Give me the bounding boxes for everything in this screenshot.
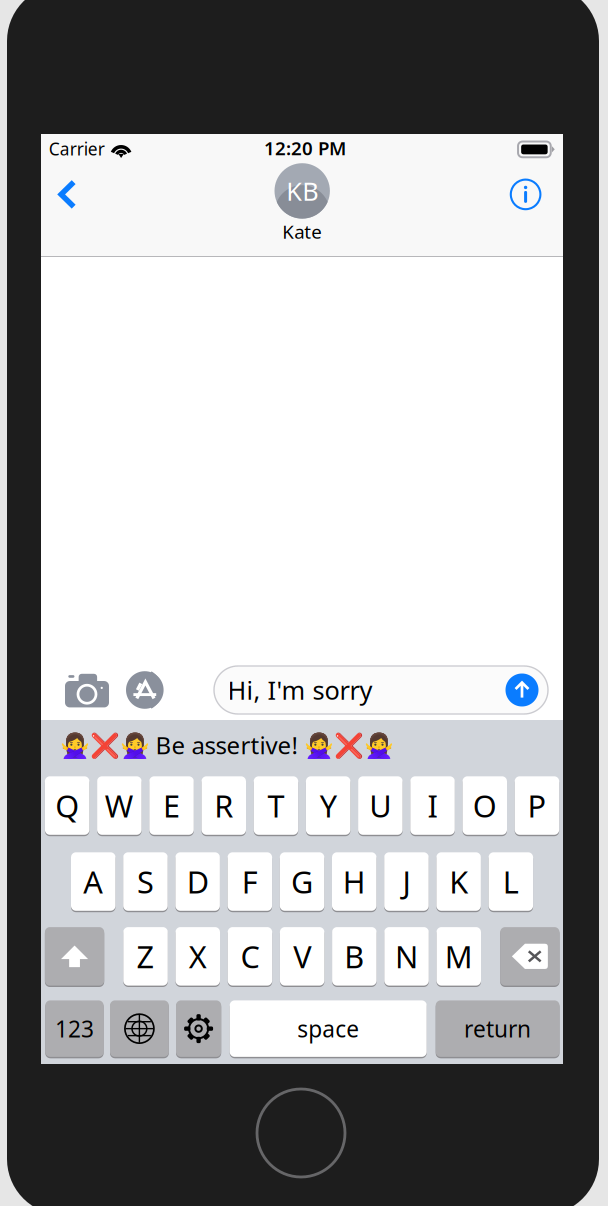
button[interactable]: Details bbox=[500, 168, 552, 220]
staticText: Hi, I'm sorry bbox=[227, 673, 372, 707]
staticText: KB bbox=[286, 174, 318, 208]
staticText: C bbox=[240, 936, 259, 977]
button[interactable]: Y bbox=[306, 776, 350, 835]
button[interactable]: Q bbox=[45, 776, 89, 835]
staticText: B bbox=[344, 936, 364, 977]
button[interactable]: 123 bbox=[45, 1000, 104, 1057]
staticText: V bbox=[293, 936, 311, 977]
staticText: Q bbox=[55, 785, 79, 826]
staticText: D bbox=[187, 861, 209, 902]
button[interactable]: Next keyboard bbox=[110, 1000, 169, 1057]
staticText: R bbox=[214, 785, 233, 826]
button[interactable]: R bbox=[201, 776, 246, 835]
button[interactable]: L bbox=[489, 852, 533, 911]
button[interactable]: J bbox=[384, 852, 429, 911]
button[interactable]: Kate bbox=[257, 163, 347, 247]
staticText: A bbox=[83, 861, 103, 902]
staticText: H bbox=[343, 861, 366, 902]
button[interactable]: Keyboard settings bbox=[176, 1000, 221, 1057]
button[interactable]: App Store bbox=[121, 666, 171, 714]
staticText: N bbox=[395, 936, 418, 977]
button[interactable]: Delete bbox=[500, 927, 559, 986]
staticText: Kate bbox=[282, 219, 322, 244]
button[interactable]: Send bbox=[505, 673, 538, 706]
staticText: Carrier bbox=[49, 137, 105, 160]
button[interactable]: F bbox=[228, 852, 272, 911]
button[interactable]: D bbox=[175, 852, 220, 911]
button[interactable]: N bbox=[384, 927, 429, 986]
button[interactable]: C bbox=[228, 927, 272, 986]
button[interactable]: S bbox=[123, 852, 168, 911]
button[interactable]: Shift bbox=[45, 927, 104, 986]
button[interactable]: M bbox=[436, 927, 481, 986]
button[interactable]: Back bbox=[40, 167, 94, 221]
button[interactable]: B bbox=[332, 927, 377, 986]
staticText: F bbox=[242, 861, 258, 902]
button[interactable]: W bbox=[97, 776, 142, 835]
button[interactable]: O bbox=[462, 776, 507, 835]
button[interactable]: I bbox=[410, 776, 455, 835]
button[interactable]: Z bbox=[123, 927, 168, 986]
staticText: Y bbox=[320, 785, 337, 826]
staticText: 12:20 PM bbox=[264, 136, 346, 160]
staticText: O bbox=[473, 785, 497, 826]
staticText: M bbox=[445, 936, 473, 977]
button[interactable]: X bbox=[175, 927, 220, 986]
staticText: X bbox=[189, 936, 207, 977]
button[interactable]: K bbox=[436, 852, 481, 911]
staticText: 123 bbox=[55, 1014, 94, 1044]
staticText: I bbox=[428, 785, 438, 826]
button[interactable]: H bbox=[332, 852, 376, 911]
button[interactable]: P bbox=[515, 776, 559, 835]
staticText: S bbox=[137, 861, 154, 902]
staticText: T bbox=[267, 785, 284, 826]
staticText: Z bbox=[137, 936, 155, 977]
button[interactable]: Camera bbox=[62, 665, 112, 715]
staticText: J bbox=[402, 861, 410, 902]
staticText: 🙅‍♀️❌🙅‍♀️ Be assertive! 🙅‍♀️❌🙅‍♀️ bbox=[59, 729, 393, 761]
button[interactable]: U bbox=[358, 776, 403, 835]
button[interactable]: A bbox=[71, 852, 115, 911]
button[interactable]: E bbox=[149, 776, 194, 835]
staticText: E bbox=[163, 785, 180, 826]
staticText: return bbox=[464, 1014, 531, 1044]
staticText: G bbox=[291, 861, 313, 902]
staticText: space bbox=[297, 1014, 359, 1044]
staticText: K bbox=[449, 861, 468, 902]
staticText: W bbox=[105, 785, 134, 826]
button[interactable]: T bbox=[254, 776, 298, 835]
staticText: P bbox=[527, 785, 546, 826]
button[interactable]: V bbox=[280, 927, 324, 986]
staticText: U bbox=[369, 785, 391, 826]
button[interactable]: G bbox=[280, 852, 324, 911]
button[interactable]: return bbox=[436, 1000, 559, 1057]
staticText: L bbox=[503, 861, 519, 902]
button[interactable]: space bbox=[230, 1000, 427, 1057]
